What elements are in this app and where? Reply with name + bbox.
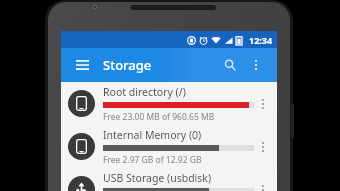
button[interactable]: More options for USB Storage (usbdisk) xyxy=(254,168,272,191)
staticText: Internal Memory (0) xyxy=(103,128,202,142)
staticText: Free 23.00 MB of 960.65 MB xyxy=(103,111,215,123)
button[interactable]: More options xyxy=(245,54,267,76)
button[interactable]: USB Storage (usbdisk) xyxy=(61,168,277,191)
button[interactable]: More options for Root directory (/) xyxy=(254,82,272,125)
button[interactable]: Open navigation drawer xyxy=(71,54,93,76)
staticText: Storage xyxy=(103,56,152,74)
button[interactable]: Root directory (/) xyxy=(61,82,277,125)
staticText: 12:34 xyxy=(249,34,273,46)
button[interactable]: Search xyxy=(219,54,241,76)
staticText: USB Storage (usbdisk) xyxy=(103,171,212,185)
button[interactable]: Internal Memory (0) xyxy=(61,125,277,168)
button[interactable]: More options for Internal Memory (0) xyxy=(254,125,272,168)
staticText: Root directory (/) xyxy=(103,85,186,99)
staticText: Free 2.97 GB of 12.92 GB xyxy=(103,154,202,166)
